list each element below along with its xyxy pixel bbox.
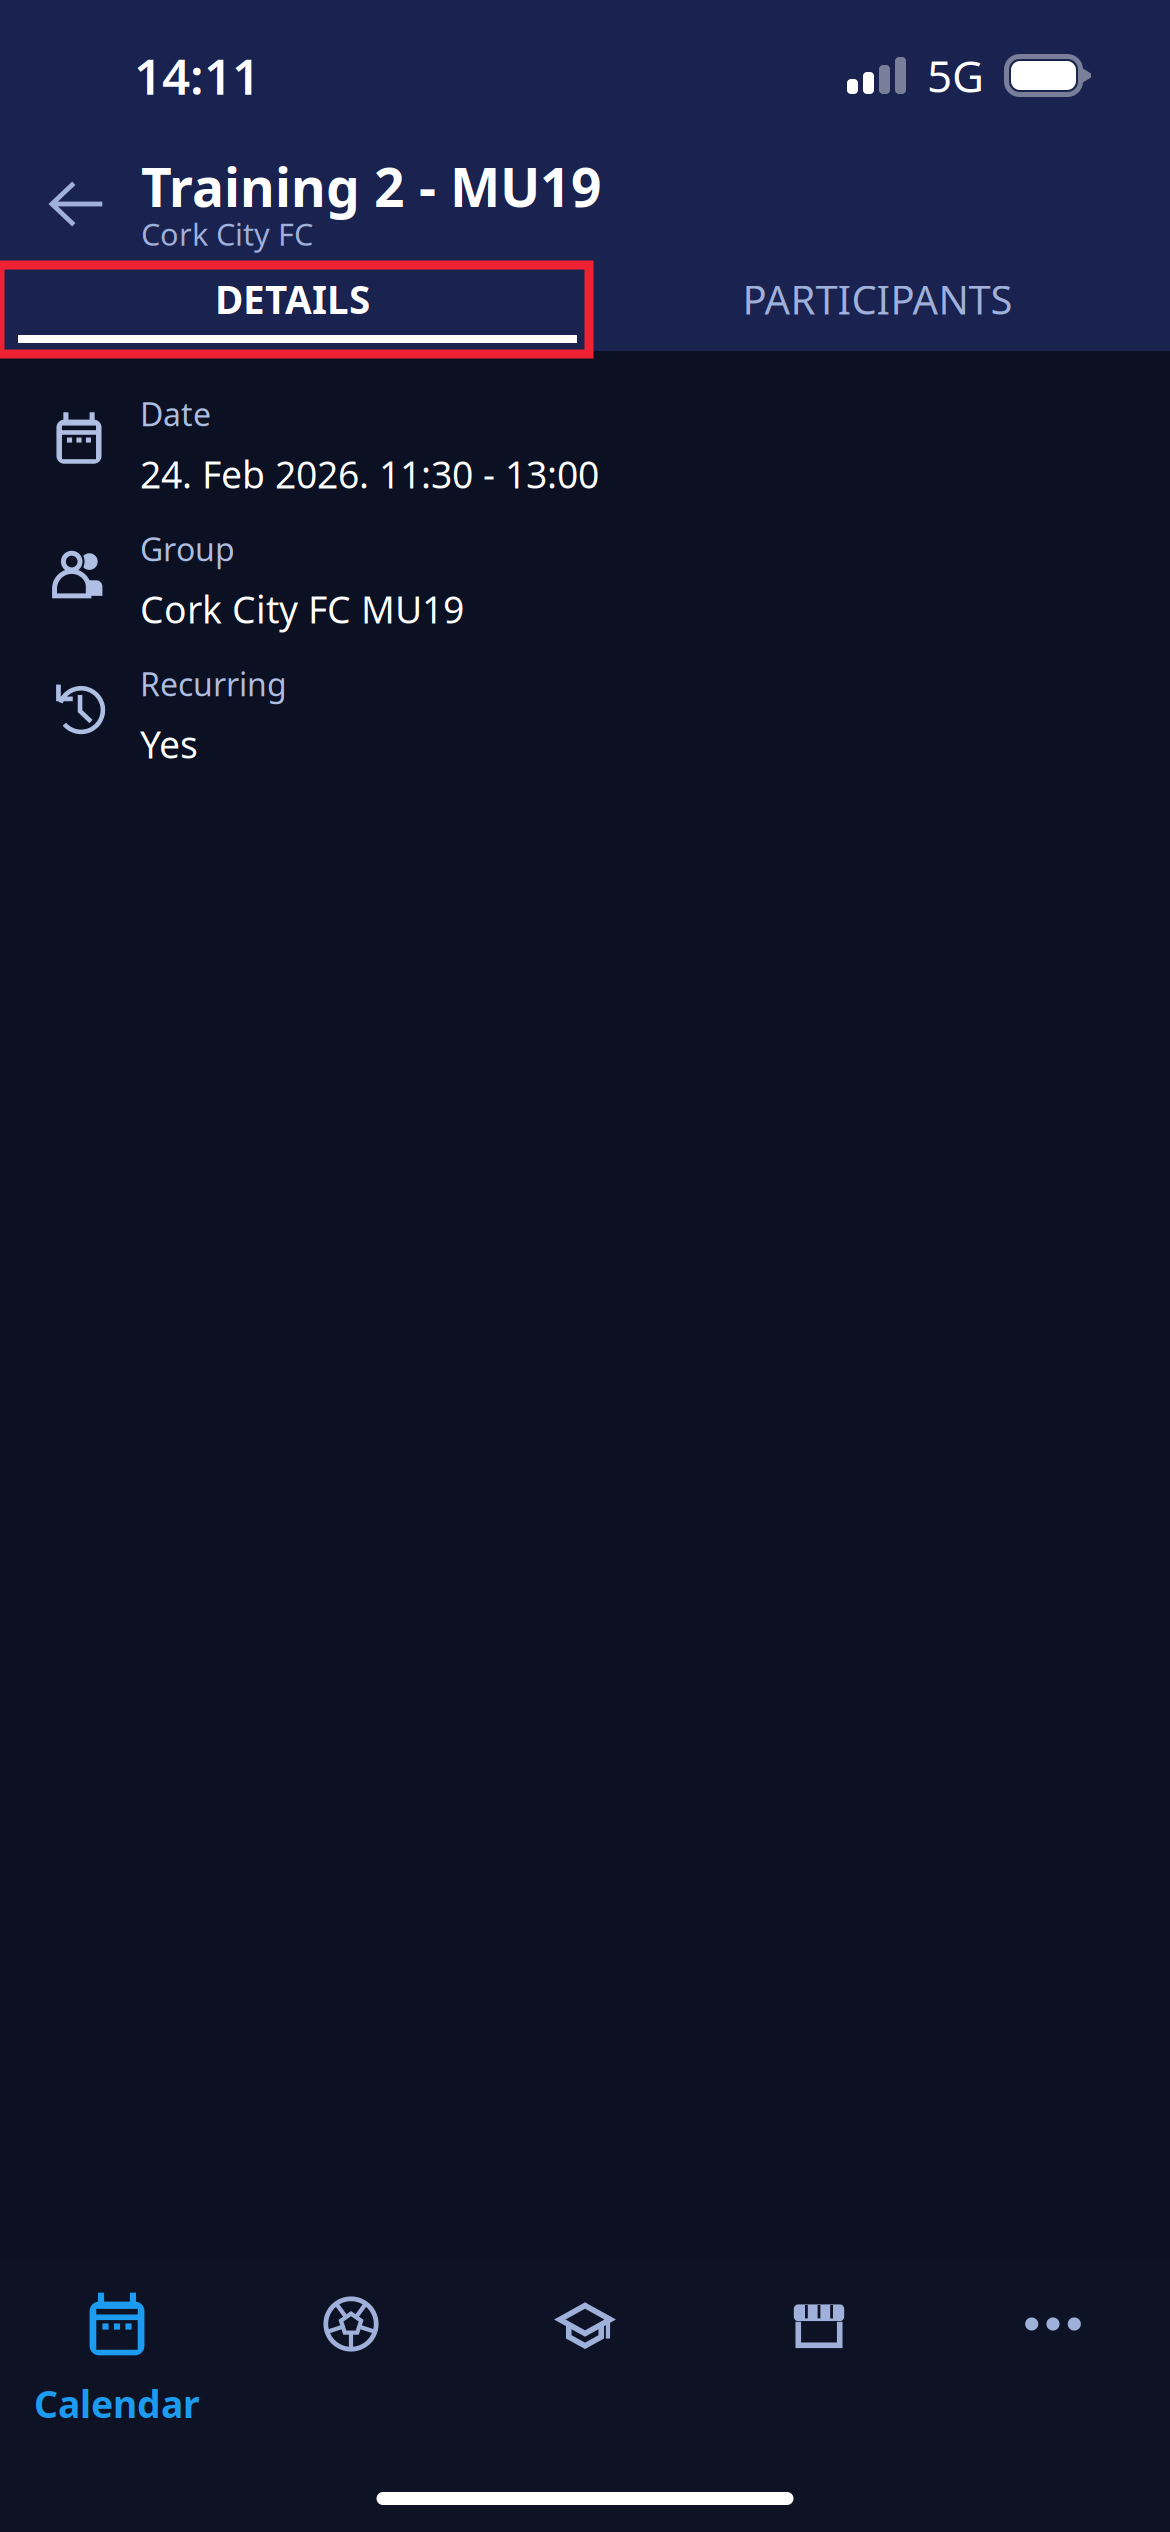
button[interactable]: Back xyxy=(0,145,141,263)
staticText: Date xyxy=(140,392,211,436)
staticText: Group xyxy=(140,527,235,571)
button[interactable] xyxy=(936,2260,1170,2456)
staticText: Cork City FC xyxy=(141,213,313,255)
button[interactable] xyxy=(702,2260,936,2456)
staticText: Calendar xyxy=(34,2378,200,2429)
button[interactable]: PARTICIPANTS xyxy=(585,263,1170,351)
staticText: Cork City FC MU19 xyxy=(140,584,464,634)
staticText: 24. Feb 2026. 11:30 - 13:00 xyxy=(140,449,599,499)
staticText: 5G xyxy=(927,45,984,105)
button[interactable]: Calendar xyxy=(0,2260,234,2456)
button[interactable] xyxy=(468,2260,702,2456)
staticText: Yes xyxy=(140,719,198,769)
staticText: Training 2 - MU19 xyxy=(141,150,602,223)
button[interactable] xyxy=(234,2260,468,2456)
button[interactable]: DETAILS xyxy=(0,263,585,351)
staticText: PARTICIPANTS xyxy=(742,272,1012,326)
staticText: 14:11 xyxy=(134,42,260,109)
staticText: Recurring xyxy=(140,662,287,706)
staticText: DETAILS xyxy=(215,273,370,325)
